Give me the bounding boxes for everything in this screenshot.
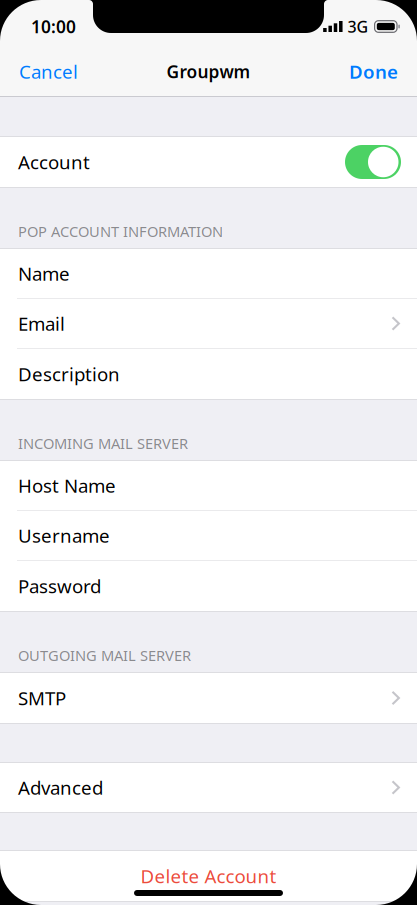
button[interactable]: Advanced [0,763,417,812]
staticText: 10:00 [31,15,76,38]
staticText: Email [18,311,65,336]
button[interactable]: Password [0,561,417,611]
staticText: SMTP [18,686,66,710]
button[interactable]: Done [337,48,417,95]
staticText: Host Name [18,473,116,498]
button[interactable]: Description [0,349,417,399]
button[interactable]: Email [0,299,417,349]
button[interactable]: Account [0,137,417,187]
staticText: Username [18,523,110,548]
staticText: POP ACCOUNT INFORMATION [18,221,223,241]
button[interactable]: Host Name [0,461,417,511]
staticText: Password [18,574,101,598]
button[interactable]: Delete Account [0,851,417,901]
button[interactable]: Username [0,511,417,561]
button[interactable]: Cancel [0,48,90,95]
staticText: Cancel [19,59,78,84]
staticText: Name [18,261,70,286]
staticText: Description [18,362,120,386]
staticText: Advanced [18,775,103,800]
staticText: Groupwm [166,60,250,83]
staticText: OUTGOING MAIL SERVER [18,645,191,665]
button[interactable]: Name [0,249,417,299]
staticText: Done [349,59,398,84]
staticText: Delete Account [140,864,276,888]
button[interactable]: SMTP [0,673,417,723]
staticText: 3G [348,16,369,37]
staticText: Account [18,150,90,174]
staticText: INCOMING MAIL SERVER [18,433,188,453]
